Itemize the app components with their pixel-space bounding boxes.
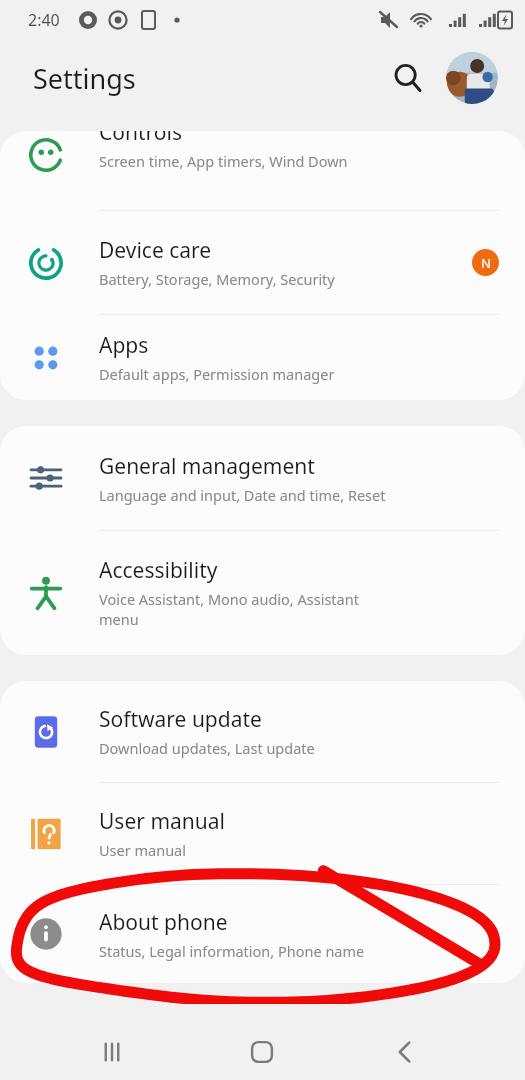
staticText: Battery, Storage, Memory, Security <box>99 269 335 289</box>
button[interactable]: Software update <box>0 681 525 782</box>
button[interactable]: General management <box>0 426 525 530</box>
staticText: N <box>481 254 491 272</box>
staticText: Screen time, App timers, Wind Down <box>99 151 348 171</box>
staticText: Language and input, Date and time, Reset <box>99 485 386 505</box>
button[interactable]: Controls <box>0 131 525 210</box>
staticText: User manual <box>99 840 186 860</box>
staticText: Device care <box>99 236 212 265</box>
staticText: Software update <box>99 705 262 734</box>
button[interactable]: Search <box>384 54 432 102</box>
button[interactable]: Back <box>371 1018 439 1080</box>
staticText: 2:40 <box>28 9 60 31</box>
staticText: Accessibility <box>99 556 218 585</box>
staticText: General management <box>99 452 315 481</box>
button[interactable]: Home <box>228 1018 296 1080</box>
button[interactable]: Accessibility <box>0 531 525 655</box>
staticText: Download updates, Last update <box>99 738 315 758</box>
button[interactable]: About phone <box>0 885 525 983</box>
staticText: Settings <box>33 60 136 97</box>
button[interactable]: Account <box>446 52 498 104</box>
staticText: Default apps, Permission manager <box>99 364 335 384</box>
staticText: Voice Assistant, Mono audio, Assistant m… <box>99 589 359 630</box>
staticText: User manual <box>99 807 225 836</box>
staticText: Controls <box>99 131 182 147</box>
button[interactable]: User manual <box>0 783 525 884</box>
staticText: Status, Legal information, Phone name <box>99 941 365 961</box>
button[interactable]: Recent apps <box>78 1018 146 1080</box>
staticText: About phone <box>99 908 228 937</box>
staticText: Apps <box>99 331 149 360</box>
button[interactable]: Device care <box>0 211 525 314</box>
button[interactable]: Apps <box>0 315 525 400</box>
